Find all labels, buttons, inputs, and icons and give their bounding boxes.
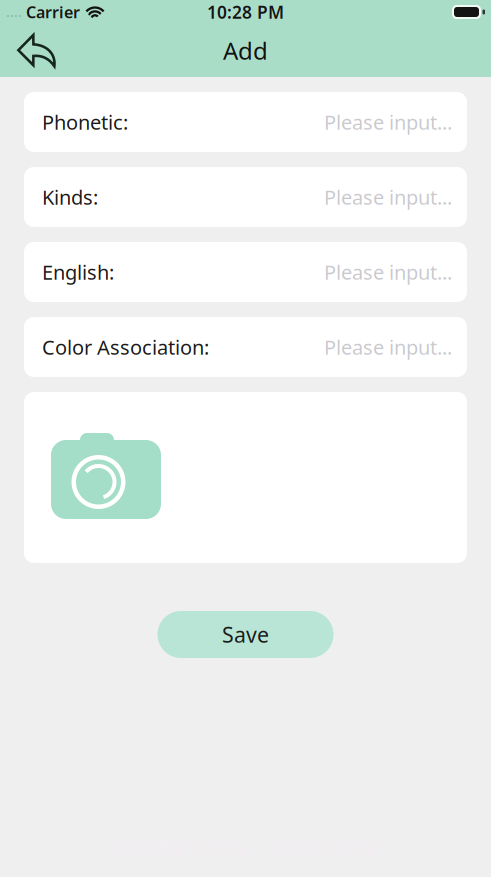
button[interactable]: Kinds: bbox=[24, 167, 467, 227]
staticText: Phonetic: bbox=[42, 109, 128, 135]
button[interactable]: English: bbox=[24, 242, 467, 302]
staticText: 10:28 PM bbox=[207, 0, 284, 23]
button[interactable]: Add photo bbox=[24, 392, 467, 563]
button[interactable]: Color Association: bbox=[24, 317, 467, 377]
staticText: Kinds: bbox=[42, 184, 98, 210]
staticText: Please input... bbox=[324, 259, 452, 285]
staticText: Color Association: bbox=[42, 334, 209, 360]
staticText: Add bbox=[223, 35, 268, 66]
staticText: Please input... bbox=[324, 334, 452, 360]
staticText: Please input... bbox=[324, 109, 452, 135]
staticText: Carrier bbox=[26, 1, 80, 23]
button[interactable]: Phonetic: bbox=[24, 92, 467, 152]
staticText: English: bbox=[42, 259, 114, 285]
staticText: Please input... bbox=[324, 184, 452, 210]
button[interactable]: Back bbox=[0, 24, 70, 76]
staticText: .... bbox=[6, 3, 22, 21]
button[interactable]: Save bbox=[157, 611, 333, 658]
staticText: Save bbox=[222, 620, 269, 649]
